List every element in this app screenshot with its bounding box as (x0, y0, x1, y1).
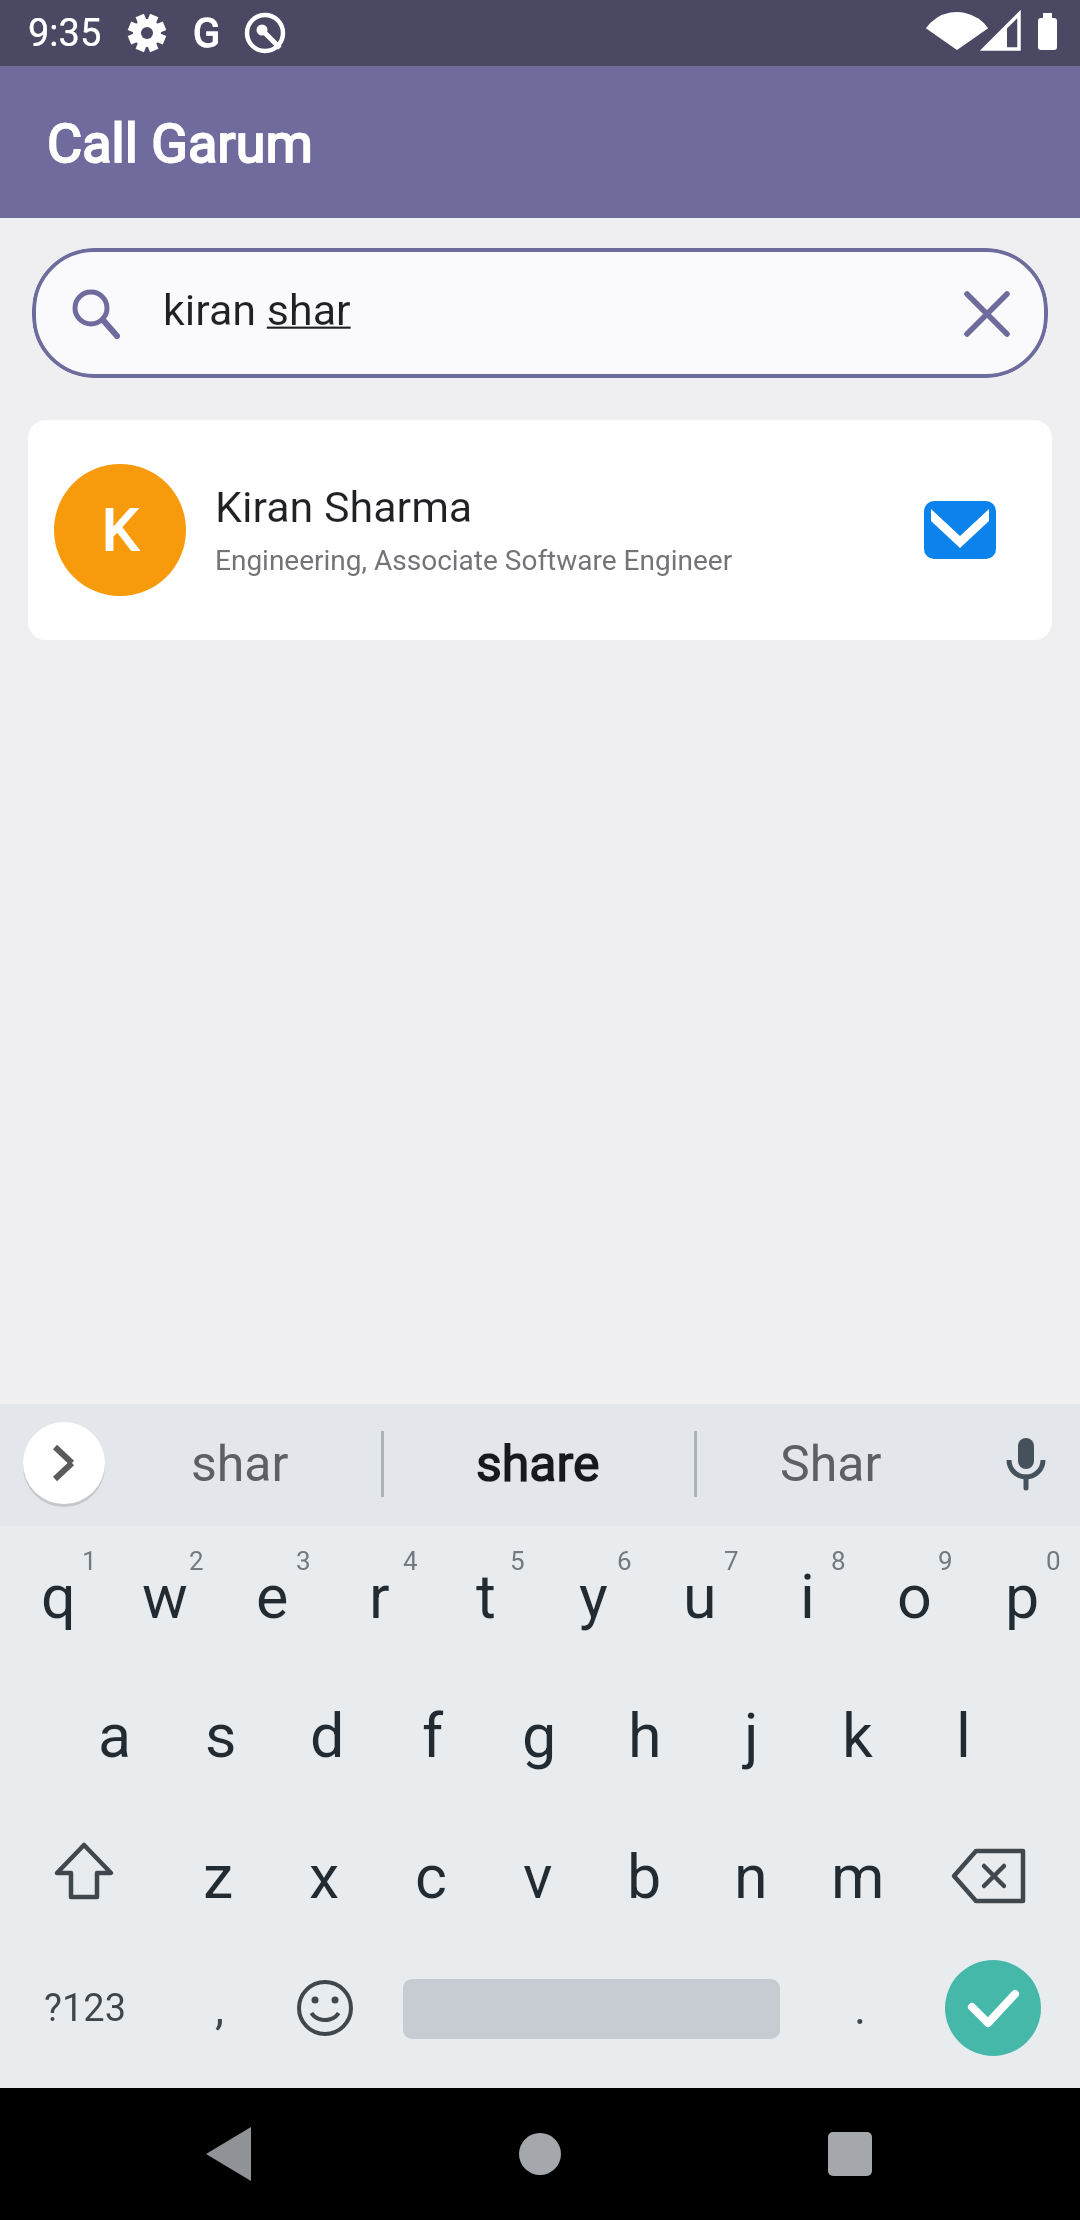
button[interactable] (27, 1427, 101, 1501)
staticText: t (476, 1561, 496, 1632)
staticText: 8 (831, 1546, 846, 1576)
button[interactable]: j (698, 1665, 804, 1805)
staticText: n (734, 1841, 768, 1912)
staticText: o (897, 1561, 932, 1632)
staticText: y (579, 1561, 608, 1632)
button[interactable]: Shar (780, 1435, 882, 1494)
button[interactable]: c (378, 1806, 484, 1946)
button[interactable]: g (486, 1665, 592, 1805)
button[interactable] (28, 420, 1052, 640)
staticText: G (193, 10, 221, 57)
staticText: w (142, 1561, 188, 1632)
staticText: z (203, 1841, 234, 1912)
staticText: q (41, 1561, 76, 1632)
staticText: 5 (510, 1546, 525, 1576)
staticText: r (369, 1561, 390, 1632)
button[interactable]: l (910, 1665, 1016, 1805)
button[interactable]: f (380, 1665, 486, 1805)
button[interactable]: a (62, 1665, 168, 1805)
staticText: x (309, 1841, 340, 1912)
staticText: m (831, 1841, 885, 1912)
button[interactable]: i (754, 1526, 860, 1666)
staticText: b (627, 1841, 662, 1912)
button[interactable]: o (861, 1526, 967, 1666)
button[interactable]: m (805, 1806, 911, 1946)
button[interactable]: p (969, 1526, 1075, 1666)
button[interactable]: b (591, 1806, 697, 1946)
staticText: 6 (617, 1546, 632, 1576)
button[interactable]: q (5, 1526, 111, 1666)
button[interactable] (780, 2096, 920, 2212)
staticText: v (523, 1841, 553, 1912)
button[interactable]: v (485, 1806, 591, 1946)
staticText: d (310, 1700, 345, 1771)
staticText: s (205, 1700, 237, 1771)
staticText: 3 (296, 1546, 311, 1576)
button[interactable] (986, 1424, 1066, 1504)
button[interactable]: share (476, 1435, 600, 1494)
staticText: 9:35 (28, 11, 102, 56)
staticText: u (683, 1561, 717, 1632)
button[interactable] (924, 501, 996, 559)
button[interactable]: r (326, 1526, 432, 1666)
button[interactable]: d (274, 1665, 380, 1805)
staticText: k (842, 1700, 873, 1771)
button[interactable]: ?123 (44, 1986, 127, 2031)
staticText: kiran shar (163, 285, 351, 335)
staticText: 7 (724, 1546, 739, 1576)
staticText: 2 (189, 1546, 204, 1576)
staticText: 0 (1046, 1546, 1061, 1576)
staticText: a (98, 1700, 132, 1771)
button[interactable]: y (540, 1526, 646, 1666)
button[interactable] (279, 1962, 371, 2054)
button[interactable] (30, 1816, 140, 1936)
staticText: e (256, 1561, 289, 1632)
button[interactable] (470, 2096, 610, 2212)
button[interactable] (160, 2096, 300, 2212)
button[interactable]: shar (191, 1435, 289, 1494)
staticText: l (956, 1700, 971, 1771)
button[interactable] (32, 248, 1048, 378)
button[interactable]: x (271, 1806, 377, 1946)
staticText: 9 (938, 1546, 953, 1576)
button[interactable]: u (647, 1526, 753, 1666)
button[interactable]: z (165, 1806, 271, 1946)
staticText: p (1005, 1561, 1040, 1632)
staticText: Kiran Sharma (215, 482, 473, 532)
button[interactable]: n (698, 1806, 804, 1946)
staticText: K (102, 496, 139, 564)
staticText: 4 (403, 1546, 418, 1576)
staticText: h (628, 1700, 662, 1771)
button[interactable]: e (219, 1526, 325, 1666)
button[interactable]: w (112, 1526, 218, 1666)
button[interactable] (945, 1960, 1041, 2056)
staticText: Call Garum (47, 112, 313, 175)
staticText: f (422, 1700, 444, 1771)
button[interactable] (940, 1816, 1050, 1936)
button[interactable]: k (804, 1665, 910, 1805)
button[interactable]: . (854, 1981, 867, 2035)
staticText: c (415, 1841, 447, 1912)
staticText: Engineering, Associate Software Engineer (215, 544, 733, 577)
button[interactable]: h (592, 1665, 698, 1805)
button[interactable]: t (433, 1526, 539, 1666)
staticText: g (522, 1700, 557, 1771)
button[interactable]: , (215, 1981, 225, 2035)
staticText: j (744, 1700, 759, 1771)
staticText: 1 (82, 1546, 97, 1576)
staticText: i (800, 1561, 815, 1632)
button[interactable]: s (168, 1665, 274, 1805)
